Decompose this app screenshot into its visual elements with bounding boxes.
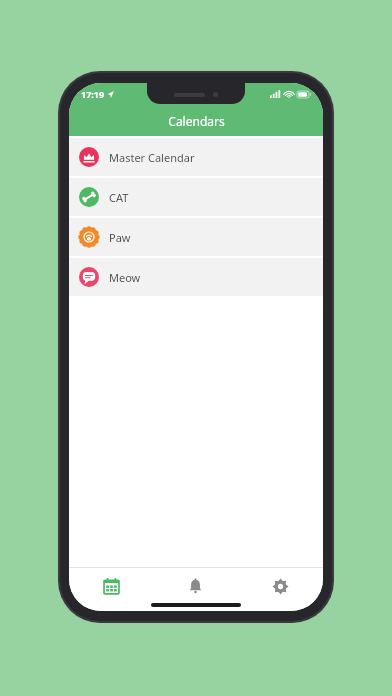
staticText: Meow xyxy=(109,270,141,285)
staticText: 17:19 xyxy=(81,88,105,100)
button[interactable]: Notifications xyxy=(153,567,238,611)
button[interactable]: Meow xyxy=(69,258,323,296)
button[interactable]: CAT xyxy=(69,178,323,216)
staticText: Paw xyxy=(109,230,131,245)
staticText: CAT xyxy=(109,190,129,205)
button[interactable]: Calendar xyxy=(69,567,153,611)
button[interactable]: Master Calendar xyxy=(69,138,323,176)
button[interactable]: Paw xyxy=(69,218,323,256)
staticText: Master Calendar xyxy=(109,150,195,165)
button[interactable]: Settings xyxy=(238,567,323,611)
staticText: Calendars xyxy=(168,113,225,129)
